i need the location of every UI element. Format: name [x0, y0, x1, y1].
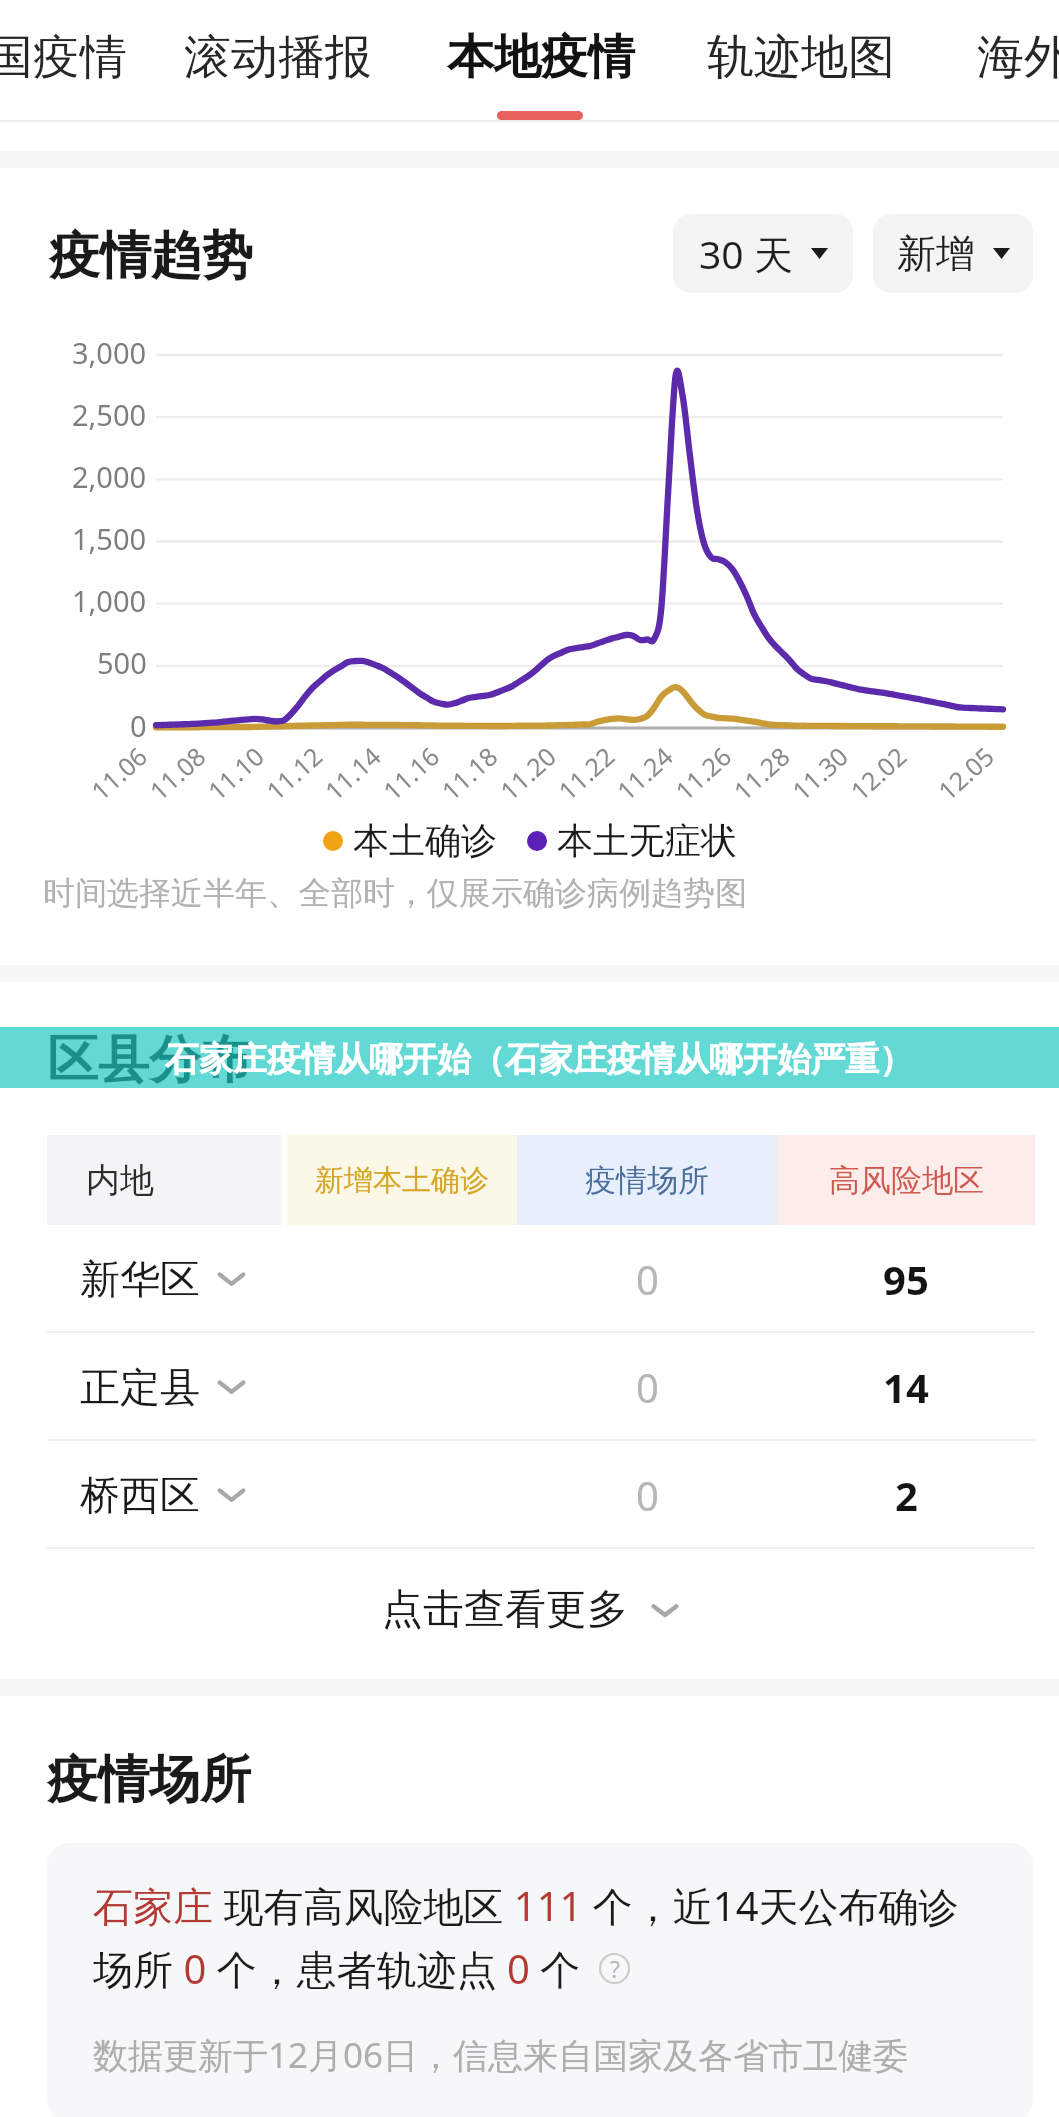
staticText: 疫情场所 [585, 1161, 709, 1200]
staticText: 滚动播报 [184, 28, 372, 87]
button[interactable]: 桥西区 [47, 1441, 1035, 1549]
button[interactable]: 正定县 [47, 1333, 1035, 1441]
staticText: 疫情趋势 [49, 224, 253, 288]
staticText: 14 [883, 1360, 929, 1414]
staticText: 内地 [86, 1159, 154, 1202]
staticText: 新增 [897, 229, 975, 278]
button[interactable]: 点击查看更多 [0, 1555, 1059, 1665]
staticText: 时间选择近半年、全部时，仅展示确诊病例趋势图 [43, 873, 747, 913]
staticText: 95 [883, 1252, 929, 1306]
staticText: 2 [895, 1468, 918, 1522]
staticText: 轨迹地图 [707, 28, 895, 87]
staticText: 0 [636, 1468, 659, 1522]
button[interactable]: 滚动播报 [166, 0, 390, 110]
staticText: 国疫情 [0, 28, 127, 87]
button[interactable]: 本地疫情 [429, 0, 653, 110]
staticText: 数据更新于12月06日，信息来自国家及各省市卫健委 [93, 2031, 909, 2079]
staticText: 本土确诊 [353, 818, 497, 863]
staticText: 0 [636, 1360, 659, 1414]
button[interactable]: 国疫情 [0, 0, 145, 110]
button[interactable]: 石家庄 现有高风险地区 111 个，近14天公布确诊 [47, 1843, 1033, 2117]
staticText: 高风险地区 [829, 1161, 984, 1200]
staticText: 本土无症状 [557, 818, 737, 863]
button[interactable]: 30 天 [673, 214, 853, 293]
staticText: ? [610, 1953, 620, 1984]
staticText: 桥西区 [80, 1470, 200, 1520]
staticText: 石家庄 现有高风险地区 111 个，近14天公布确诊 [93, 1878, 959, 1933]
staticText: 石家庄疫情从哪开始（石家庄疫情从哪开始严重） [165, 1038, 913, 1081]
staticText: 新增本土确诊 [315, 1162, 489, 1199]
button[interactable]: 新华区 [47, 1225, 1035, 1333]
button[interactable]: 轨迹地图 [689, 0, 913, 110]
staticText: 区县分布 [47, 1028, 251, 1092]
staticText: 场所 0 个，患者轨迹点 0 个 [93, 1941, 581, 1996]
button[interactable]: 海外 [959, 0, 1059, 110]
button[interactable]: Help [599, 1953, 630, 1984]
staticText: 新华区 [80, 1254, 200, 1304]
staticText: 本地疫情 [447, 28, 635, 87]
staticText: 30 天 [699, 227, 793, 280]
staticText: 点击查看更多 [382, 1584, 628, 1636]
staticText: 0 [636, 1252, 659, 1306]
button[interactable]: 新增 [873, 214, 1033, 293]
staticText: 疫情场所 [47, 1748, 251, 1812]
staticText: 正定县 [80, 1362, 200, 1412]
staticText: 海外 [977, 28, 1059, 87]
